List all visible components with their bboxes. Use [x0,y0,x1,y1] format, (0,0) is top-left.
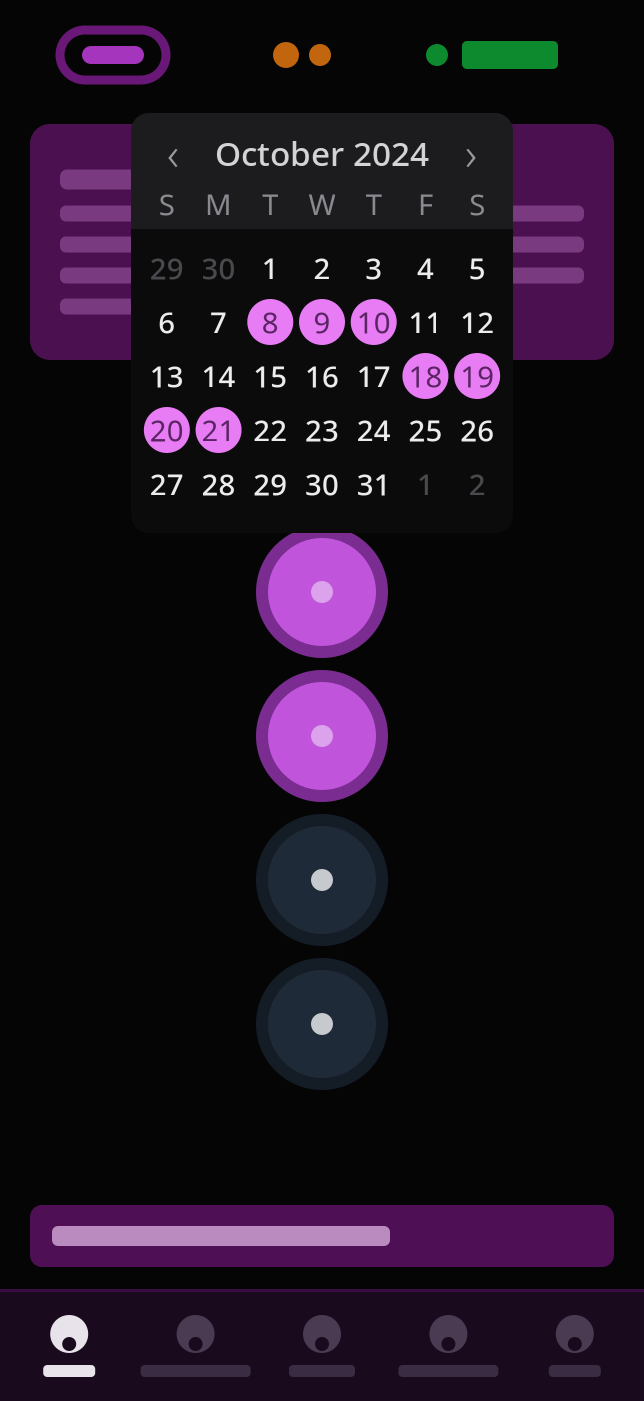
button[interactable]: 13 [141,349,193,403]
button[interactable]: 5 [451,241,503,295]
staticText: 29 [253,464,287,503]
staticText: 6 [158,302,175,341]
button[interactable]: 29 [244,457,296,511]
staticText: 5 [469,248,486,287]
staticText: 21 [202,410,236,449]
button[interactable]: 20 [141,403,193,457]
staticText: 30 [305,464,339,503]
button[interactable]: 7 [193,295,244,349]
staticText: 30 [202,248,236,287]
staticText: 16 [305,356,339,395]
button[interactable]: 30 [296,457,348,511]
staticText: 13 [150,356,184,395]
staticText: 17 [357,356,391,395]
button[interactable]: Previous month [145,127,201,179]
button[interactable]: 29 [141,241,193,295]
staticText: 18 [408,356,442,395]
staticText: M [205,184,232,223]
button[interactable]: Leaderboard [132,1301,259,1389]
staticText: 29 [150,248,184,287]
staticText: 20 [150,410,184,449]
button[interactable]: 10 [348,295,400,349]
button[interactable]: 23 [296,403,348,457]
button[interactable]: Training [259,1301,385,1389]
staticText: 27 [150,464,184,503]
button[interactable]: 31 [348,457,400,511]
button[interactable]: 18 [400,349,451,403]
staticText: 22 [253,410,287,449]
button[interactable]: 27 [141,457,193,511]
button[interactable]: 1 [244,241,296,295]
staticText: 14 [202,356,236,395]
staticText: T [366,184,382,223]
staticText: ‹ [167,123,179,183]
staticText: S [159,184,175,223]
staticText: S [469,184,485,223]
staticText: 28 [202,464,236,503]
staticText: 23 [305,410,339,449]
button[interactable]: 22 [244,403,296,457]
button[interactable]: 19 [451,349,503,403]
button[interactable]: 15 [244,349,296,403]
staticText: 9 [313,302,330,341]
button[interactable]: 2 [296,241,348,295]
button[interactable]: Home [6,1301,132,1389]
staticText: 12 [460,302,494,341]
staticText: 1 [262,248,279,287]
button[interactable]: 1 [400,457,451,511]
button[interactable]: 28 [193,457,244,511]
button[interactable]: 9 [296,295,348,349]
button[interactable]: Profile [512,1301,638,1389]
staticText: 7 [210,302,227,341]
button[interactable] [0,1205,644,1267]
button[interactable]: 11 [400,295,451,349]
staticText: 3 [365,248,382,287]
staticText: 15 [253,356,287,395]
staticText: 8 [262,302,279,341]
staticText: 25 [408,410,442,449]
staticText: 4 [417,248,434,287]
staticText: W [308,184,335,223]
button[interactable]: 3 [348,241,400,295]
staticText: 11 [408,302,442,341]
staticText: 2 [469,464,486,503]
staticText: 1 [417,464,434,503]
staticText: 26 [460,410,494,449]
staticText: 19 [460,356,494,395]
staticText: T [262,184,278,223]
button[interactable]: 8 [244,295,296,349]
staticText: › [465,123,477,183]
button[interactable]: 16 [296,349,348,403]
button[interactable]: 2 [451,457,503,511]
button[interactable]: 6 [141,295,193,349]
button[interactable]: 12 [451,295,503,349]
button[interactable]: 26 [451,403,503,457]
button[interactable]: 17 [348,349,400,403]
button[interactable]: Next month [443,127,499,179]
staticText: 2 [313,248,330,287]
staticText: October 2024 [215,131,429,175]
button[interactable]: 24 [348,403,400,457]
button[interactable]: Community [385,1301,512,1389]
staticText: 10 [357,302,391,341]
button[interactable]: 4 [400,241,451,295]
staticText: 24 [357,410,391,449]
button[interactable]: 30 [193,241,244,295]
staticText: 31 [357,464,391,503]
button[interactable]: 25 [400,403,451,457]
button[interactable]: 14 [193,349,244,403]
button[interactable]: 21 [193,403,244,457]
staticText: F [418,184,433,223]
